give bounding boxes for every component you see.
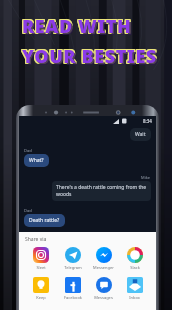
staticText: Share via: [25, 236, 47, 243]
staticText: Mike: [141, 175, 151, 180]
button[interactable]: There's a death rattle coming from the w…: [52, 181, 151, 201]
staticText: YOUR BESTIES: [21, 45, 156, 70]
staticText: READ WITH: [24, 16, 134, 41]
staticText: READ WITH: [23, 13, 133, 38]
staticText: [29, 240, 36, 247]
staticText: Messenger: [93, 265, 114, 270]
staticText: YOUR BESTIES: [23, 43, 158, 68]
staticText: Dad: [24, 208, 32, 213]
staticText: Messages: [94, 295, 113, 300]
staticText: READ WITH: [23, 15, 133, 40]
button[interactable]: What?: [24, 154, 49, 167]
button[interactable]: Messenger: [88, 247, 119, 270]
staticText: Facebook: [64, 295, 82, 300]
button[interactable]: Sleet: [25, 247, 57, 270]
staticText: Inbox: [129, 295, 140, 300]
staticText: READ WITH: [21, 15, 131, 40]
staticText: YOUR BESTIES: [24, 46, 159, 71]
button[interactable]: Facebook: [57, 277, 88, 300]
button[interactable]: Telegram: [57, 247, 88, 270]
staticText: YOUR BESTIES: [23, 44, 158, 69]
staticText: 8:34: [143, 118, 152, 124]
button[interactable]: Death rattle?: [24, 214, 65, 227]
staticText: YOUR BESTIES: [22, 45, 157, 70]
staticText: Keep: [36, 295, 46, 300]
button[interactable]: Messages: [88, 277, 119, 300]
staticText: Wait: [135, 131, 146, 138]
staticText: YOUR BESTIES: [21, 44, 156, 69]
staticText: What?: [29, 157, 44, 164]
staticText: YOUR BESTIES: [22, 44, 157, 69]
staticText: Death rattle?: [29, 217, 60, 224]
staticText: READ WITH: [21, 13, 131, 38]
staticText: YOUR BESTIES: [21, 43, 156, 68]
staticText: Sleet: [36, 265, 46, 270]
staticText: READ WITH: [22, 13, 132, 38]
staticText: Slack: [130, 265, 140, 270]
staticText: READ WITH: [22, 15, 132, 40]
staticText: READ WITH: [23, 14, 133, 39]
staticText: Dad: [24, 148, 32, 153]
button[interactable]: Keep: [25, 277, 57, 300]
staticText: YOUR BESTIES: [23, 45, 158, 70]
button[interactable]: Inbox: [119, 277, 150, 300]
staticText: READ WITH: [21, 14, 131, 39]
staticText: YOUR BESTIES: [22, 43, 157, 68]
staticText: Dad: [24, 231, 32, 236]
button[interactable]: Slack: [119, 247, 150, 270]
button[interactable]: [24, 237, 41, 250]
staticText: READ WITH: [22, 14, 132, 39]
button[interactable]: Wait: [130, 128, 151, 141]
staticText: Telegram: [64, 265, 82, 270]
staticText: There's a death rattle coming from the w…: [56, 184, 147, 198]
